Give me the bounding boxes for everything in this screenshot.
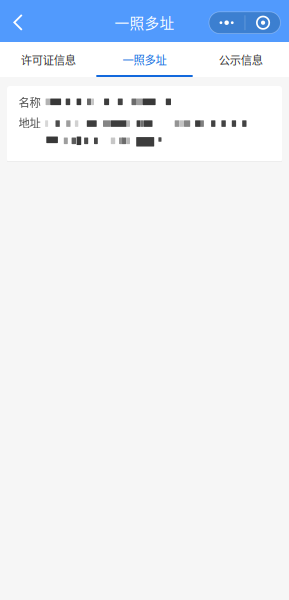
staticText: 公示信息	[219, 51, 263, 68]
button[interactable]: 一照多址	[96, 42, 193, 77]
staticText: 名称	[18, 94, 40, 110]
staticText: 一照多址	[114, 12, 174, 33]
button[interactable]: 许可证信息	[0, 42, 96, 77]
staticText: 许可证信息	[21, 51, 76, 68]
button[interactable]: Back	[0, 1, 38, 43]
button[interactable]: 公示信息	[193, 42, 289, 77]
button[interactable]: More options	[209, 12, 280, 34]
staticText: 地址	[18, 114, 40, 131]
staticText: 一照多址	[122, 51, 166, 68]
